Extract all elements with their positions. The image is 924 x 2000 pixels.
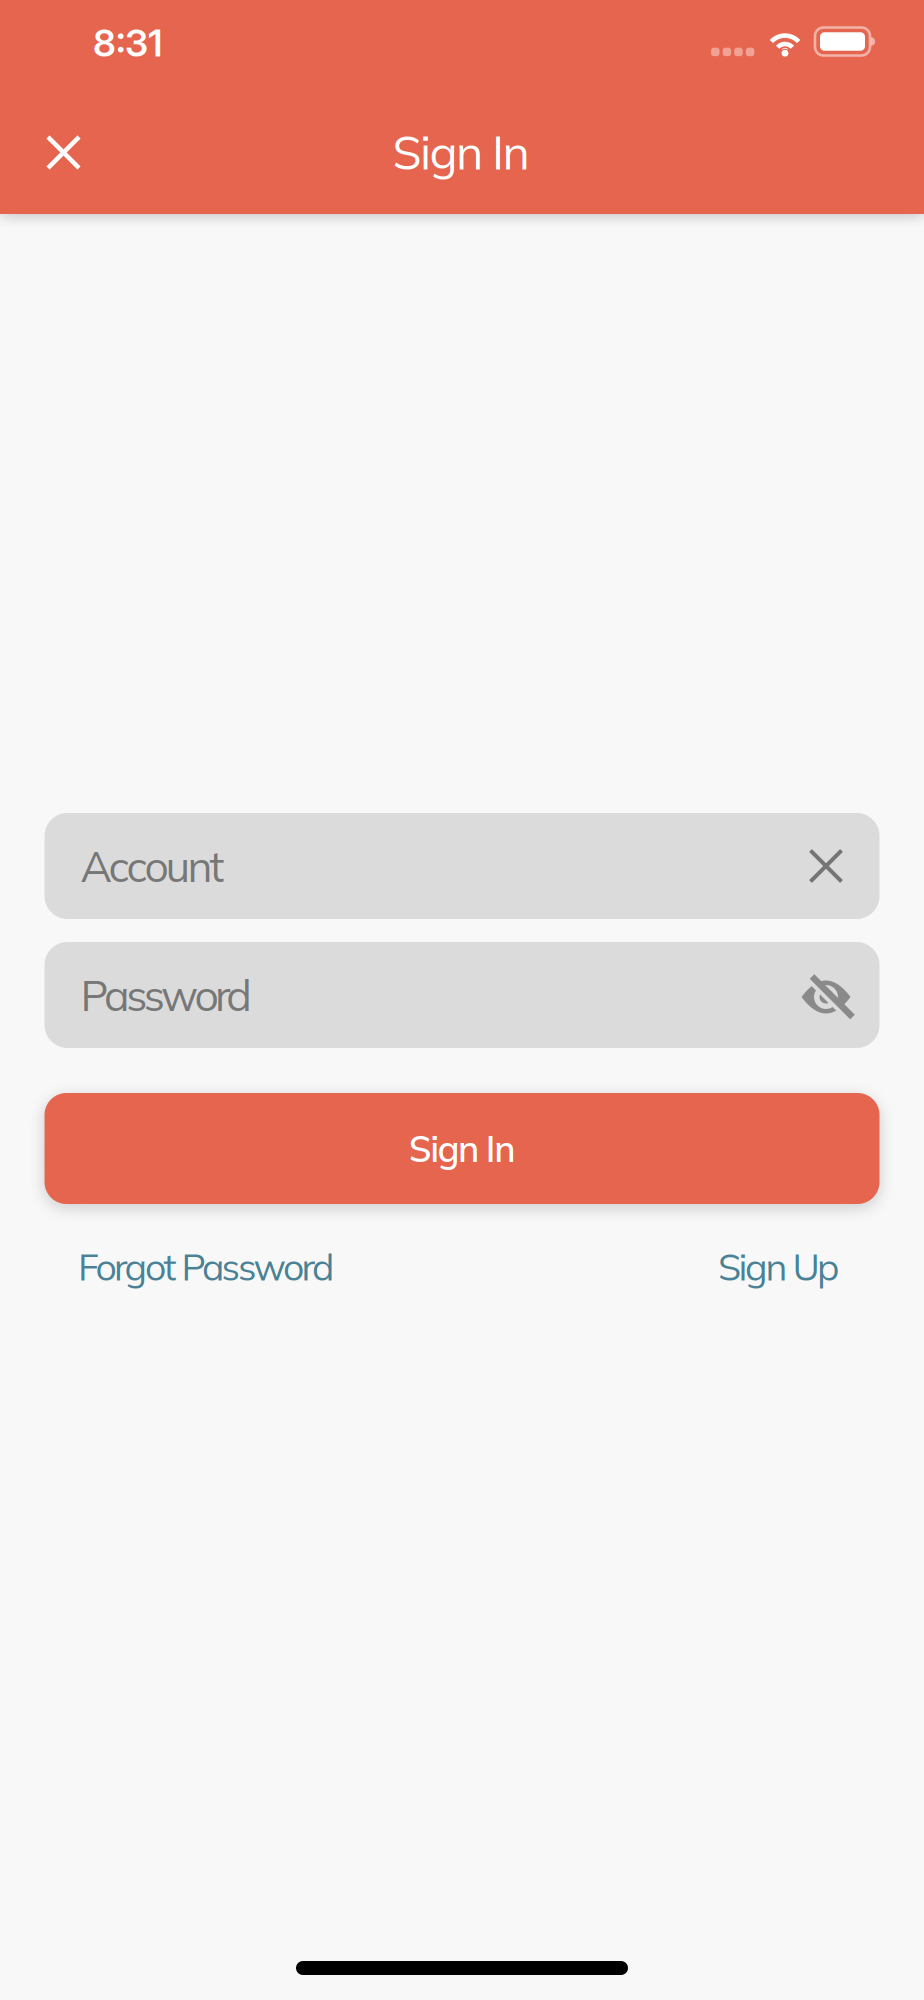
- button[interactable]: Show password: [801, 974, 850, 1015]
- staticText: Forgot Password: [78, 1243, 334, 1290]
- staticText: Password: [80, 968, 252, 1022]
- button[interactable]: Account: [44, 813, 879, 919]
- staticText: 8:31: [93, 20, 163, 66]
- staticText: Sign In: [392, 123, 529, 181]
- button[interactable]: Sign Up: [718, 1243, 839, 1290]
- button[interactable]: Password: [44, 942, 879, 1048]
- button[interactable]: Clear text: [810, 850, 841, 881]
- staticText: Sign Up: [718, 1243, 839, 1290]
- staticText: Sign In: [409, 1126, 515, 1171]
- button[interactable]: Forgot Password: [78, 1243, 334, 1290]
- button[interactable]: Close: [34, 123, 93, 182]
- staticText: Account: [80, 839, 224, 893]
- button[interactable]: Sign In: [44, 1093, 879, 1204]
